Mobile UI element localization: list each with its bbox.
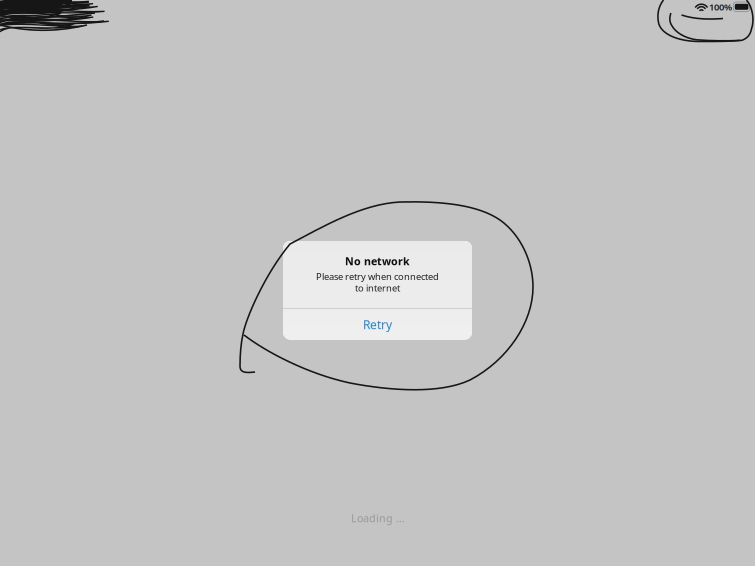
staticText: Loading … [351, 511, 404, 525]
staticText: Please retry when connected [316, 270, 439, 283]
button[interactable]: Retry [283, 309, 472, 340]
staticText: Retry [363, 316, 392, 332]
staticText: No network [345, 254, 410, 268]
staticText: 100% [709, 1, 732, 13]
staticText: to internet [355, 282, 400, 294]
